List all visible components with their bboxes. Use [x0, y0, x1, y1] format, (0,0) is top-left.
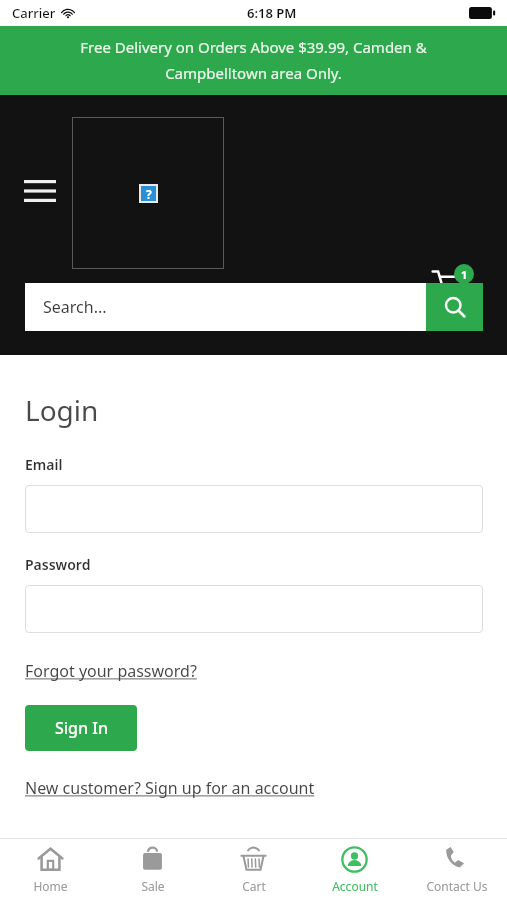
staticText: Contact Us — [426, 878, 488, 894]
button[interactable]: Search — [426, 283, 483, 331]
staticText: Account — [332, 878, 378, 894]
staticText: New customer? Sign up for an account — [25, 777, 315, 799]
staticText: 6:18 PM — [247, 4, 297, 22]
staticText: Search... — [43, 296, 107, 318]
button[interactable]: Home — [0, 839, 101, 900]
staticText: Login — [25, 391, 99, 429]
staticText: Sign In — [55, 717, 108, 739]
staticText: Email — [25, 455, 63, 474]
button[interactable]: Forgot your password? — [25, 660, 197, 682]
button[interactable]: New customer? Sign up for an account — [25, 777, 315, 799]
staticText: Sale — [141, 878, 165, 894]
staticText: Carrier — [12, 4, 56, 22]
staticText: Forgot your password? — [25, 660, 197, 682]
staticText: Free Delivery on Orders Above $39.99, Ca… — [16, 37, 491, 84]
button[interactable]: Password field — [25, 585, 483, 633]
staticText: Home — [33, 878, 68, 894]
button[interactable]: Sale — [102, 839, 203, 900]
button[interactable]: Logo — [72, 117, 224, 269]
button[interactable]: Email field — [25, 485, 483, 533]
staticText: Cart — [242, 878, 266, 894]
button[interactable]: Account — [304, 839, 405, 900]
button[interactable]: Search... — [25, 283, 426, 331]
button[interactable]: Sign In — [25, 705, 137, 751]
button[interactable]: Cart — [203, 839, 304, 900]
staticText: ? — [146, 186, 152, 201]
button[interactable]: Contact Us — [406, 839, 507, 900]
staticText: Password — [25, 555, 91, 574]
button[interactable]: Cart — [430, 258, 486, 314]
button[interactable]: Menu — [14, 165, 66, 217]
staticText: 1 — [461, 267, 468, 282]
